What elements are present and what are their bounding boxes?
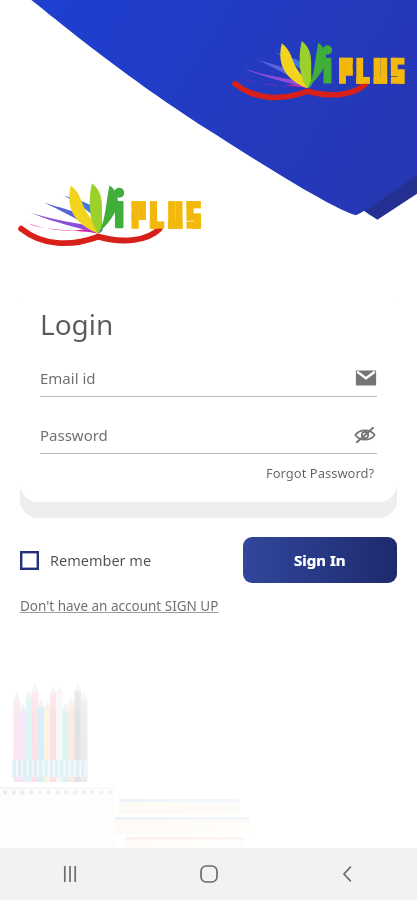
button[interactable]: Home — [139, 848, 278, 900]
staticText: Remember me — [50, 550, 152, 570]
staticText: Login — [40, 305, 114, 343]
button[interactable]: Back — [278, 848, 417, 900]
staticText: Sign In — [294, 550, 346, 570]
button[interactable]: Show password — [353, 423, 377, 447]
button[interactable]: Recent apps — [0, 848, 139, 900]
staticText: Email id — [40, 368, 355, 388]
button[interactable]: Remember me — [20, 544, 152, 576]
staticText: Password — [40, 425, 353, 445]
button[interactable]: Don't have an account SIGN UP — [20, 597, 219, 615]
button[interactable]: Sign In — [243, 537, 397, 583]
staticText: Don't have an account SIGN UP — [20, 597, 219, 615]
button[interactable]: Forgot Password? — [264, 462, 377, 484]
staticText: Forgot Password? — [266, 464, 375, 482]
button[interactable]: Email id — [40, 367, 377, 397]
button[interactable]: Password — [40, 423, 377, 454]
